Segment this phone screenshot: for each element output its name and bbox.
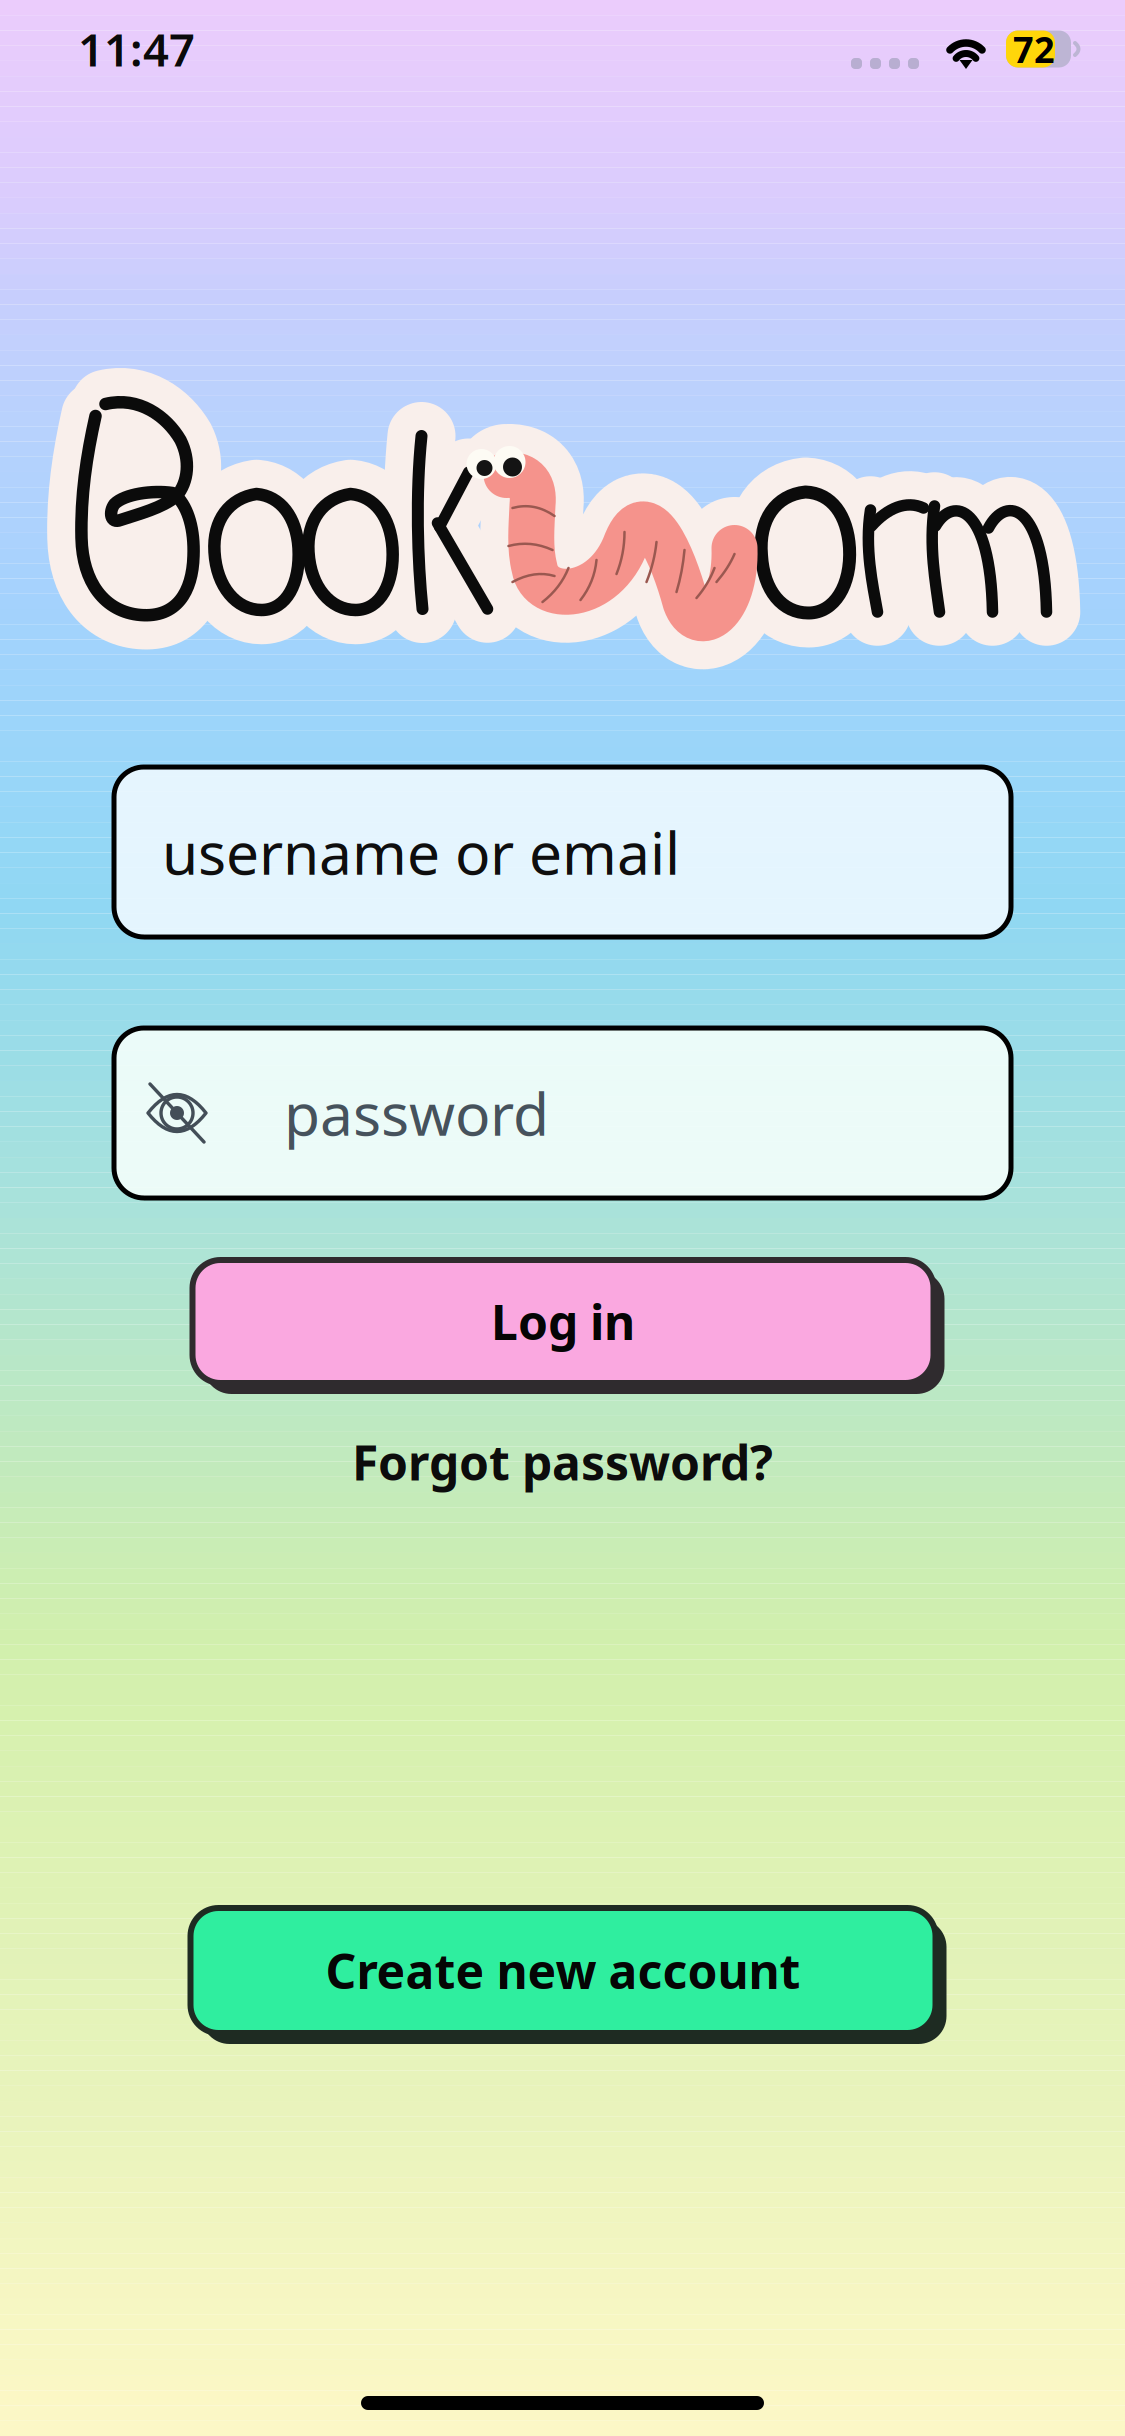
button[interactable]: password: [114, 1028, 1011, 1198]
staticText: 11:47: [78, 19, 195, 79]
staticText: username or email: [162, 813, 680, 891]
staticText: Create new account: [325, 1939, 800, 2002]
button[interactable]: Create new account: [178, 1908, 946, 2044]
button[interactable]: Forgot password?: [352, 1431, 773, 1493]
button[interactable]: username or email: [114, 767, 1011, 937]
button[interactable]: Log in: [180, 1260, 944, 1394]
staticText: 72: [1013, 25, 1055, 73]
staticText: Forgot password?: [352, 1430, 773, 1494]
staticText: password: [284, 1074, 549, 1152]
staticText: Log in: [491, 1290, 635, 1353]
